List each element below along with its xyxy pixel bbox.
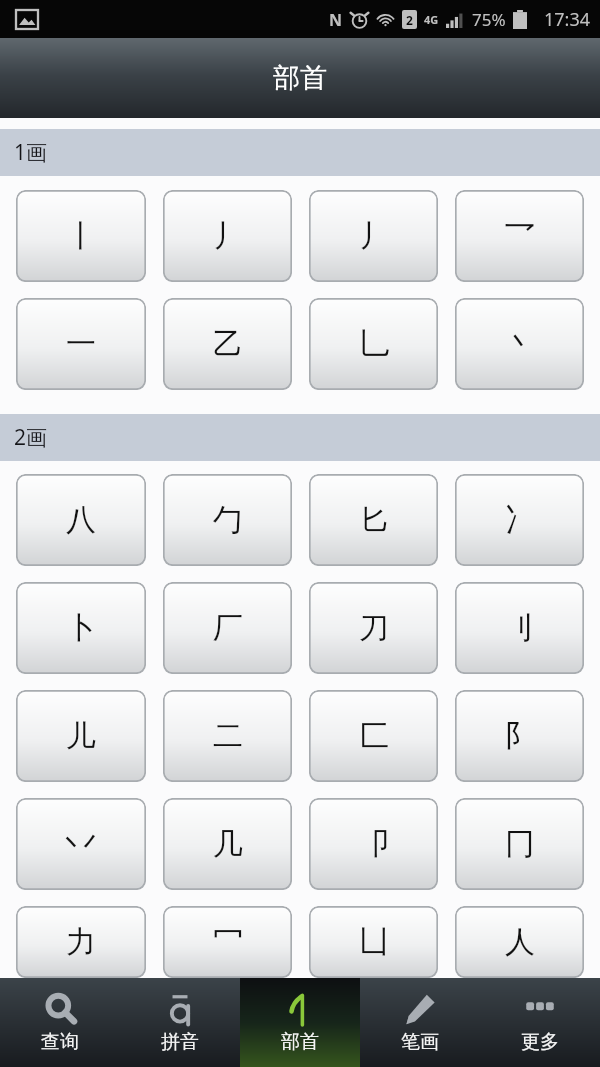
staticText: 4G <box>424 12 439 27</box>
staticText: 乙 <box>213 325 243 363</box>
button[interactable]: 八 <box>16 474 146 566</box>
button[interactable]: 厂 <box>163 582 292 674</box>
button[interactable]: 阝 <box>455 690 584 782</box>
button[interactable]: 丿 <box>309 190 438 282</box>
staticText: 冫 <box>505 501 535 539</box>
staticText: 丿 <box>213 217 243 255</box>
button[interactable]: 儿 <box>16 690 146 782</box>
staticText: 刀 <box>359 609 389 647</box>
button[interactable]: 冖 <box>163 906 292 978</box>
staticText: 1画 <box>14 138 48 167</box>
staticText: 刂 <box>505 609 535 647</box>
staticText: 一 <box>66 325 96 363</box>
button[interactable]: 查询 <box>0 978 120 1067</box>
staticText: 查询 <box>41 1030 79 1054</box>
staticText: 冂 <box>505 825 535 863</box>
button[interactable]: 一 <box>16 298 146 390</box>
staticText: 2画 <box>14 423 48 452</box>
staticText: 丶 <box>505 325 535 363</box>
staticText: 匚 <box>359 717 389 755</box>
other: Gallery <box>15 9 39 30</box>
staticText: 勹 <box>213 501 243 539</box>
staticText: 儿 <box>66 717 96 755</box>
staticText: 丷 <box>66 825 96 863</box>
button[interactable]: 匚 <box>309 690 438 782</box>
button[interactable]: 拼音 <box>120 978 240 1067</box>
button[interactable]: 冫 <box>455 474 584 566</box>
staticText: 更多 <box>521 1030 559 1054</box>
button[interactable]: 几 <box>163 798 292 890</box>
staticText: 部首 <box>273 61 327 95</box>
button[interactable]: 更多 <box>480 978 600 1067</box>
staticText: 丨 <box>66 217 96 255</box>
button[interactable]: 部首 <box>240 978 360 1067</box>
staticText: 冖 <box>213 923 243 961</box>
staticText: 匕 <box>359 501 389 539</box>
button[interactable]: 二 <box>163 690 292 782</box>
button[interactable]: 刂 <box>455 582 584 674</box>
staticText: 人 <box>505 923 535 961</box>
button[interactable]: 笔画 <box>360 978 480 1067</box>
button[interactable]: 勹 <box>163 474 292 566</box>
staticText: 凵 <box>359 923 389 961</box>
staticText: 卜 <box>66 609 96 647</box>
button[interactable]: 丷 <box>16 798 146 890</box>
staticText: 力 <box>66 923 96 961</box>
button[interactable]: 卜 <box>16 582 146 674</box>
staticText: 几 <box>213 825 243 863</box>
staticText: 八 <box>66 501 96 539</box>
button[interactable]: 乙 <box>163 298 292 390</box>
staticText: 2 <box>406 12 413 28</box>
button[interactable]: 丶 <box>455 298 584 390</box>
staticText: 拼音 <box>161 1030 199 1054</box>
staticText: 笔画 <box>401 1030 439 1054</box>
staticText: 厂 <box>213 609 243 647</box>
button[interactable]: 力 <box>16 906 146 978</box>
button[interactable]: 乚 <box>309 298 438 390</box>
button[interactable]: 乛 <box>455 190 584 282</box>
staticText: 阝 <box>505 717 535 755</box>
button[interactable]: 刀 <box>309 582 438 674</box>
staticText: 乛 <box>505 217 535 255</box>
staticText: 丿 <box>359 217 389 255</box>
staticText: 卩 <box>359 825 389 863</box>
button[interactable]: 匕 <box>309 474 438 566</box>
staticText: 二 <box>213 717 243 755</box>
staticText: 乚 <box>359 325 389 363</box>
staticText: 75% <box>472 8 506 31</box>
staticText: 部首 <box>281 1030 319 1054</box>
staticText: 17:34 <box>544 7 591 32</box>
button[interactable]: 凵 <box>309 906 438 978</box>
staticText: N <box>329 9 343 31</box>
button[interactable]: 人 <box>455 906 584 978</box>
button[interactable]: 冂 <box>455 798 584 890</box>
button[interactable]: 丨 <box>16 190 146 282</box>
button[interactable]: 丿 <box>163 190 292 282</box>
button[interactable]: 卩 <box>309 798 438 890</box>
